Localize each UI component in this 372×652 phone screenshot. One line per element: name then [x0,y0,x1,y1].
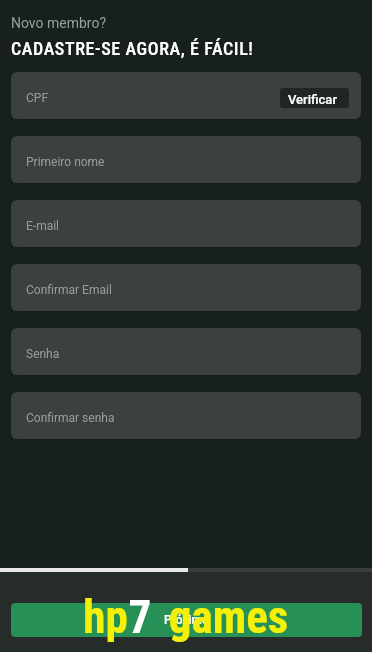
staticText: E-mail [26,219,60,233]
staticText: CADASTRE-SE AGORA, É FÁCIL! [11,38,254,59]
staticText: games [169,589,289,644]
button[interactable]: Confirmar Email [11,264,361,311]
button[interactable]: Próximo [11,603,362,637]
button[interactable]: Confirmar senha [11,392,361,439]
button[interactable]: Primeiro nome [11,136,361,183]
staticText: CPF [26,91,49,105]
staticText: Primeiro nome [26,155,105,169]
button[interactable]: E-mail [11,200,361,247]
button[interactable]: Verificar [280,88,349,108]
staticText: 7 [128,589,151,644]
staticText: Próximo [164,613,209,627]
staticText: hp [83,589,128,644]
staticText: Novo membro? [11,15,107,31]
button[interactable]: CPF [11,72,361,119]
staticText: Senha [26,347,60,361]
staticText: Verificar [288,92,337,107]
staticText: Confirmar senha [26,411,115,425]
staticText: Confirmar Email [26,283,112,297]
button[interactable]: Senha [11,328,361,375]
